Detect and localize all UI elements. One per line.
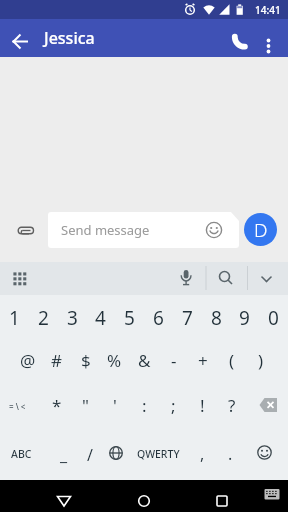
button[interactable]	[48, 212, 239, 248]
button[interactable]: &	[130, 337, 159, 384]
button[interactable]: "	[71, 382, 100, 429]
button[interactable]	[258, 482, 286, 506]
button[interactable]: 8	[202, 294, 231, 341]
staticText: 4	[95, 305, 106, 331]
button[interactable]	[120, 480, 168, 512]
staticText: &	[138, 349, 151, 372]
staticText: :	[142, 394, 147, 417]
staticText: ;	[171, 394, 176, 417]
button[interactable]: (	[217, 337, 246, 384]
staticText: 6	[153, 305, 164, 331]
button[interactable]	[204, 220, 224, 240]
staticText: +	[198, 349, 208, 372]
staticText: D	[254, 217, 268, 243]
button[interactable]: +	[188, 337, 217, 384]
staticText: _	[60, 444, 68, 466]
staticText: '	[113, 394, 117, 417]
staticText: QWERTY	[137, 447, 180, 461]
staticText: 8	[211, 305, 222, 331]
button[interactable]	[198, 480, 246, 512]
staticText: #	[51, 349, 62, 372]
button[interactable]: #	[42, 337, 71, 384]
staticText: 7	[182, 305, 193, 331]
button[interactable]: 0	[259, 294, 288, 341]
staticText: = \ <	[9, 401, 26, 412]
staticText: 0	[268, 305, 279, 331]
button[interactable]	[172, 262, 202, 295]
button[interactable]: 6	[144, 294, 173, 341]
button[interactable]: ;	[159, 382, 188, 429]
button[interactable]: 2	[29, 294, 58, 341]
button[interactable]: /	[78, 431, 102, 478]
button[interactable]: 4	[86, 294, 115, 341]
button[interactable]	[250, 387, 286, 434]
button[interactable]: = \ <	[2, 383, 32, 430]
button[interactable]: '	[100, 382, 129, 429]
button[interactable]: 7	[173, 294, 202, 341]
button[interactable]: QWERTY	[130, 430, 186, 477]
button[interactable]	[258, 28, 280, 55]
button[interactable]	[12, 216, 40, 244]
staticText: )	[258, 349, 264, 372]
staticText: 3	[67, 305, 78, 331]
button[interactable]: _	[50, 431, 78, 478]
button[interactable]: 1	[0, 294, 29, 341]
staticText: (	[229, 349, 235, 372]
button[interactable]	[6, 27, 34, 55]
button[interactable]: .	[216, 430, 244, 477]
staticText: Send message	[61, 221, 150, 239]
staticText: ABC	[11, 447, 32, 461]
button[interactable]: %	[100, 337, 129, 384]
button[interactable]	[250, 262, 280, 295]
button[interactable]	[226, 28, 253, 55]
button[interactable]: ?	[217, 382, 246, 429]
staticText: Jessica	[44, 27, 95, 49]
staticText: @	[20, 349, 36, 372]
button[interactable]: -	[159, 337, 188, 384]
staticText: "	[82, 394, 89, 417]
staticText: -	[171, 349, 177, 372]
button[interactable]: !	[188, 382, 217, 429]
button[interactable]: *	[42, 382, 71, 429]
button[interactable]	[103, 429, 129, 476]
button[interactable]: D	[244, 213, 277, 246]
staticText: *	[52, 394, 62, 417]
button[interactable]: ABC	[2, 430, 40, 477]
button[interactable]: $	[71, 337, 100, 384]
staticText: /	[87, 444, 93, 466]
button[interactable]: 3	[58, 294, 87, 341]
button[interactable]	[6, 265, 34, 293]
button[interactable]: 9	[230, 294, 259, 341]
staticText: 14:41	[255, 3, 281, 17]
button[interactable]: )	[246, 337, 275, 384]
staticText: 2	[38, 305, 49, 331]
staticText: !	[200, 394, 205, 417]
button[interactable]	[210, 262, 240, 295]
staticText: .	[228, 443, 233, 465]
staticText: 5	[124, 305, 135, 331]
button[interactable]: 5	[115, 294, 144, 341]
button[interactable]	[40, 480, 88, 512]
button[interactable]: :	[130, 382, 159, 429]
staticText: ,	[200, 443, 205, 465]
button[interactable]: @	[13, 337, 42, 384]
staticText: %	[107, 349, 122, 372]
staticText: 9	[239, 305, 250, 331]
staticText: ?	[228, 394, 236, 417]
button[interactable]: ,	[188, 430, 216, 477]
button[interactable]	[246, 429, 282, 476]
staticText: 1	[9, 305, 20, 331]
staticText: $	[81, 349, 91, 372]
